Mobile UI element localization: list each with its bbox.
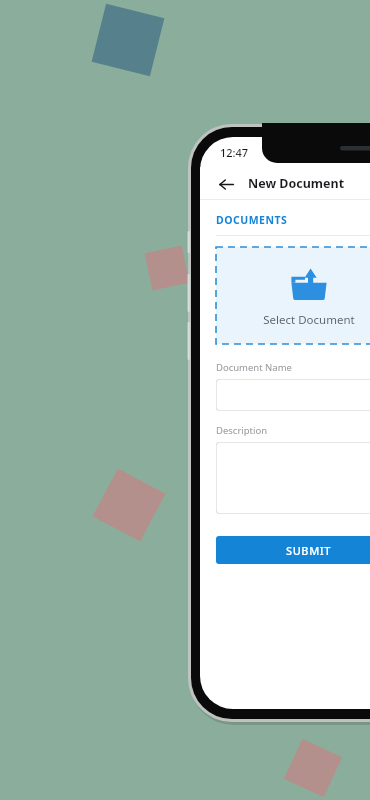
staticText: Select Document [263, 312, 355, 328]
button[interactable]: Select Document [216, 247, 370, 344]
button[interactable]: Back [213, 171, 239, 197]
staticText: SUBMIT [286, 543, 332, 558]
staticText: Document Name [216, 361, 292, 374]
button[interactable] [216, 379, 370, 411]
button[interactable] [216, 442, 370, 514]
staticText: DOCUMENTS [216, 213, 288, 227]
staticText: Description [216, 424, 268, 437]
staticText: 12:47 [220, 145, 249, 160]
staticText: New Document [248, 175, 345, 192]
button[interactable]: SUBMIT [216, 536, 370, 564]
